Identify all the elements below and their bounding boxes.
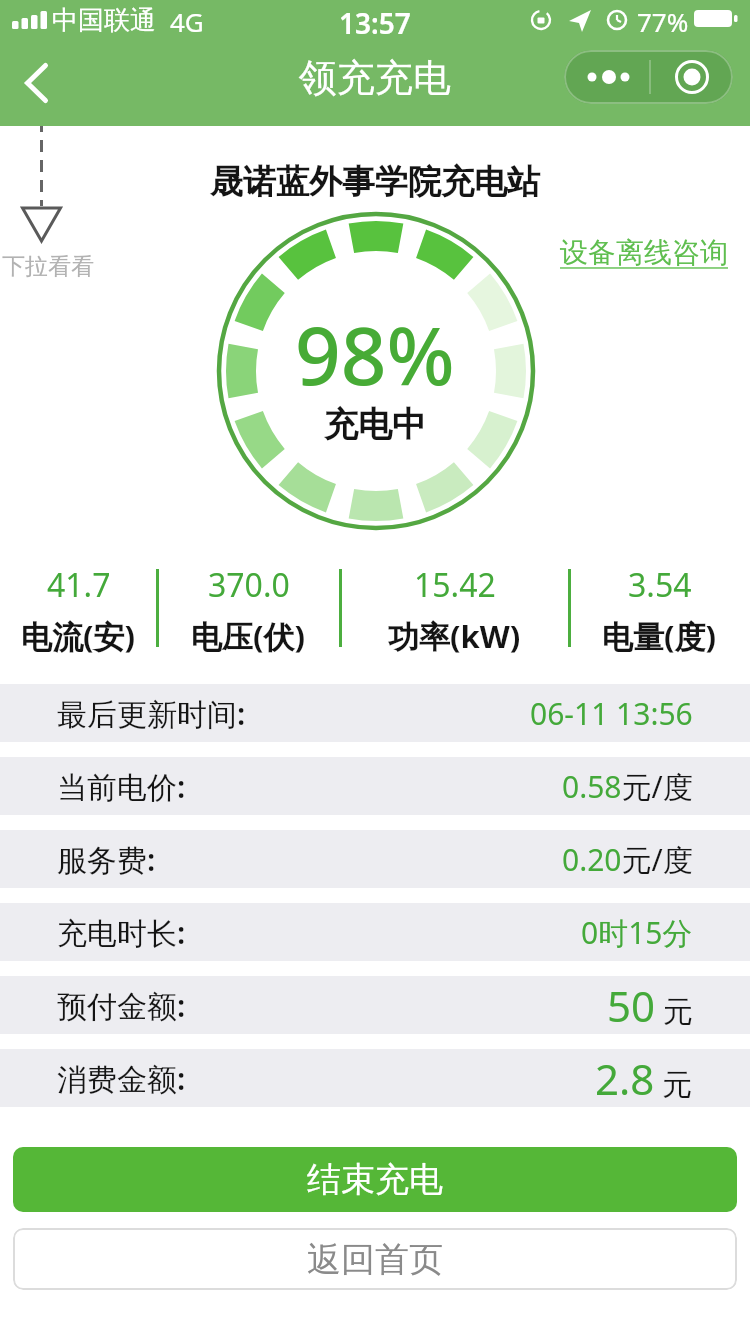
staticText: 0.20元/度 (562, 839, 693, 880)
button[interactable]: 返回首页 (13, 1228, 737, 1290)
button[interactable] (10, 55, 62, 111)
staticText: 充电中 (324, 403, 426, 446)
staticText: 06-11 13:56 (530, 693, 693, 734)
staticText: 15.42 (414, 563, 496, 607)
staticText: 13:57 (339, 4, 411, 36)
staticText: 下拉看看 (2, 252, 94, 278)
staticText: 电流(安) (21, 615, 136, 657)
button[interactable]: 结束充电 (13, 1147, 737, 1212)
staticText: 77% (637, 4, 689, 36)
staticText: 结束充电 (307, 1158, 443, 1201)
staticText: 41.7 (47, 563, 111, 607)
staticText: 50 元 (607, 977, 693, 1034)
button[interactable] (564, 50, 733, 104)
staticText: 98% (295, 299, 455, 408)
staticText: 电压(伏) (191, 615, 306, 657)
staticText: 0.58元/度 (562, 766, 693, 807)
staticText: 服务费: (57, 839, 156, 880)
staticText: 消费金额: (57, 1058, 186, 1099)
staticText: 功率(kW) (388, 615, 521, 657)
staticText: 充电时长: (57, 912, 186, 953)
staticText: 预付金额: (57, 985, 186, 1026)
staticText: 4G (170, 4, 204, 36)
staticText: 晟诺蓝外事学院充电站 (210, 161, 540, 203)
staticText: 中国联通 (52, 4, 156, 36)
staticText: 电量(度) (602, 615, 717, 657)
staticText: 领充充电 (299, 54, 451, 102)
staticText: 设备离线咨询 (560, 235, 728, 270)
staticText: 当前电价: (57, 766, 186, 807)
staticText: 最后更新时间: (57, 693, 246, 734)
staticText: 0时15分 (581, 912, 693, 953)
staticText: 370.0 (208, 563, 290, 607)
staticText: 返回首页 (307, 1238, 443, 1281)
staticText: 2.8 元 (595, 1050, 693, 1107)
staticText: 3.54 (628, 563, 692, 607)
button[interactable]: 设备离线咨询 (560, 234, 728, 270)
